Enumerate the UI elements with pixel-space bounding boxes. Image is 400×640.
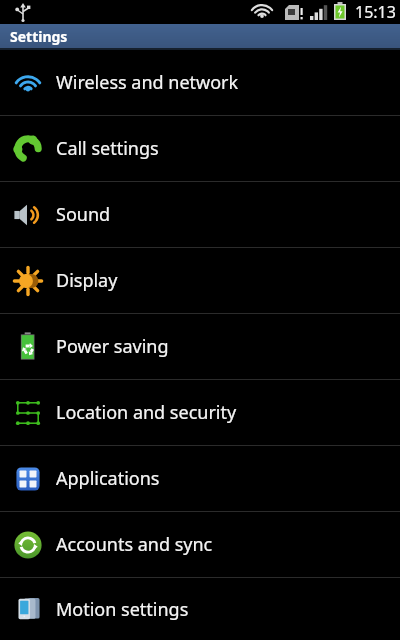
button[interactable]: Power saving [0, 314, 400, 379]
staticText: Location and security [56, 400, 237, 425]
staticText: Settings [10, 27, 68, 46]
button[interactable]: Applications [0, 446, 400, 511]
staticText: Call settings [56, 136, 159, 161]
button[interactable]: Accounts and sync [0, 512, 400, 577]
button[interactable]: Sound [0, 182, 400, 247]
staticText: Display [56, 268, 118, 293]
staticText: Motion settings [56, 597, 189, 622]
staticText: Sound [56, 202, 111, 227]
button[interactable]: Wireless and network [0, 50, 400, 115]
staticText: Applications [56, 466, 160, 491]
button[interactable]: Location and security [0, 380, 400, 445]
button[interactable]: Motion settings [0, 578, 400, 640]
staticText: Accounts and sync [56, 532, 213, 557]
staticText: Power saving [56, 334, 169, 359]
button[interactable]: Call settings [0, 116, 400, 181]
staticText: Wireless and network [56, 70, 239, 95]
button[interactable]: Display [0, 248, 400, 313]
staticText: 15:13 [355, 1, 396, 23]
